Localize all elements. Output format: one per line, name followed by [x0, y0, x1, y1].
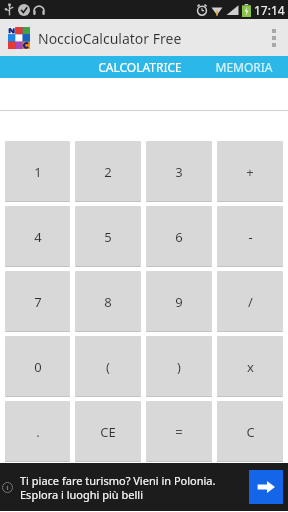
button[interactable]: 0 [5, 336, 70, 397]
staticText: 6 [175, 228, 183, 246]
staticText: Ti piace fare turismo? Vieni in Polonia.… [20, 473, 230, 502]
button[interactable]: 7 [5, 271, 70, 332]
staticText: 0 [34, 358, 42, 376]
button[interactable]: CALCOLATRICE [81, 56, 199, 78]
staticText: + [246, 163, 254, 181]
other: Ad information [2, 482, 13, 493]
button[interactable]: More options [260, 19, 288, 56]
button[interactable]: . [5, 401, 70, 462]
button[interactable]: 3 [146, 141, 212, 202]
staticText: 4 [34, 228, 42, 246]
staticText: . [36, 423, 40, 441]
button[interactable]: Ti piace fare turismo? Vieni in Polonia.… [0, 463, 288, 511]
button[interactable]: / [217, 271, 283, 332]
staticText: 8 [104, 293, 112, 311]
button[interactable]: 9 [146, 271, 212, 332]
button[interactable]: ( [75, 336, 141, 397]
staticText: 9 [175, 293, 183, 311]
button[interactable]: C [217, 401, 283, 462]
staticText: 7 [34, 293, 42, 311]
button[interactable]: 2 [75, 141, 141, 202]
button[interactable]: 8 [75, 271, 141, 332]
button[interactable]: + [217, 141, 283, 202]
button[interactable]: 6 [146, 206, 212, 267]
button[interactable]: ) [146, 336, 212, 397]
button[interactable]: 1 [5, 141, 70, 202]
button[interactable]: = [146, 401, 212, 462]
button[interactable]: x [217, 336, 283, 397]
button[interactable]: 5 [75, 206, 141, 267]
button[interactable]: CE [75, 401, 141, 462]
staticText: / [248, 293, 253, 311]
staticText: NoccioCalculator Free [38, 29, 182, 48]
button[interactable]: MEMORIA [199, 56, 288, 78]
staticText: 2 [104, 163, 112, 181]
staticText: MEMORIA [215, 59, 273, 75]
staticText: CALCOLATRICE [98, 59, 182, 75]
button[interactable]: - [217, 206, 283, 267]
staticText: ( [106, 358, 110, 376]
button[interactable]: 4 [5, 206, 70, 267]
staticText: 17:14 [254, 2, 285, 18]
staticText: ) [177, 358, 181, 376]
button[interactable]: Open advertisement [249, 470, 283, 504]
staticText: = [175, 423, 183, 441]
staticText: 1 [34, 163, 42, 181]
staticText: 5 [104, 228, 112, 246]
staticText: x [247, 358, 254, 376]
staticText: CE [100, 423, 116, 441]
staticText: - [248, 228, 253, 246]
staticText: C [246, 423, 255, 441]
staticText: 3 [175, 163, 183, 181]
